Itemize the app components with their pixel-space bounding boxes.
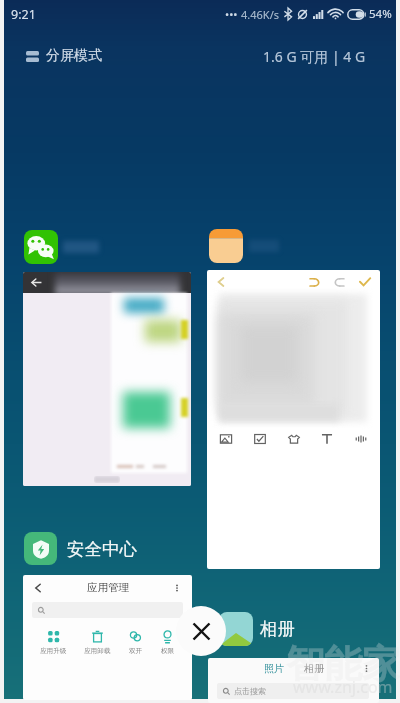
button[interactable]: 应用升级 <box>40 625 67 655</box>
button[interactable] <box>23 272 191 486</box>
staticText: 照片 <box>264 662 284 675</box>
staticText: 权限 <box>161 647 175 655</box>
button[interactable]: Style <box>287 432 301 446</box>
button[interactable]: Checklist <box>253 432 267 446</box>
staticText: www.znj.com <box>293 676 393 698</box>
staticText: 智能家 <box>286 640 400 688</box>
staticText: 安全中心 <box>67 538 137 560</box>
button[interactable] <box>24 230 99 264</box>
button[interactable]: Insert image <box>207 270 380 569</box>
button[interactable]: 照片 <box>208 658 379 703</box>
staticText: 相册 <box>260 618 295 640</box>
button[interactable]: 权限 <box>160 625 175 655</box>
staticText: ••• <box>225 7 238 22</box>
button[interactable] <box>209 229 279 263</box>
staticText: 点击搜索 <box>234 686 266 696</box>
button[interactable]: Close all apps <box>176 606 226 656</box>
button[interactable]: 双开 <box>128 625 143 655</box>
button[interactable]: Text <box>320 432 334 446</box>
staticText: 分屏模式 <box>46 47 102 65</box>
staticText: 应用卸载 <box>84 647 111 655</box>
staticText: 应用升级 <box>40 647 67 655</box>
button[interactable]: 应用管理 <box>23 575 192 700</box>
button[interactable]: Audio <box>354 432 368 446</box>
button[interactable]: 分屏模式 <box>26 43 102 69</box>
button[interactable]: 安全中心 <box>24 532 137 565</box>
staticText: 1.6 G 可用 | 4 G <box>263 47 366 66</box>
staticText: 相册 <box>304 662 324 675</box>
button[interactable]: 应用卸载 <box>84 625 111 655</box>
staticText: 双开 <box>129 647 143 655</box>
button[interactable]: Insert image <box>219 432 233 446</box>
staticText: 9:21 <box>11 6 36 23</box>
staticText: 4.46K/s <box>241 7 279 22</box>
button[interactable]: 相册 <box>219 612 295 646</box>
staticText: 54% <box>369 6 392 22</box>
staticText: 应用管理 <box>87 581 129 594</box>
